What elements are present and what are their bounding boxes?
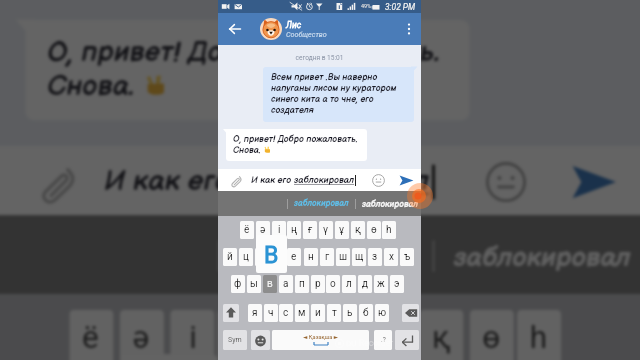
staticText: ы	[250, 278, 258, 290]
button[interactable]: ц	[239, 248, 253, 266]
button[interactable]: қ	[419, 310, 463, 360]
button[interactable]: Avatar	[260, 18, 282, 40]
button[interactable]: з	[368, 248, 382, 266]
staticText: и	[315, 307, 321, 319]
button[interactable]: ү	[318, 310, 362, 360]
button[interactable]: заблокировал	[288, 194, 355, 214]
staticText: д	[362, 278, 369, 290]
button[interactable]: ң	[217, 310, 262, 360]
button[interactable]: р	[311, 275, 325, 293]
button[interactable]: д	[358, 275, 372, 293]
staticText: заблокировал	[294, 199, 349, 209]
button[interactable]: т	[327, 304, 341, 322]
button[interactable]: заблокировал	[221, 225, 432, 288]
button[interactable]: с	[279, 304, 293, 322]
staticText: ё	[82, 319, 101, 357]
staticText: ё	[244, 224, 250, 236]
button[interactable]: ы	[247, 275, 261, 293]
button[interactable]: ё	[69, 310, 113, 360]
staticText: ү	[331, 319, 350, 357]
button[interactable]: Enter	[395, 330, 419, 350]
button[interactable]: Всем привет .Вы наверно напуганы лисом н…	[263, 67, 414, 122]
staticText: ж	[377, 278, 385, 290]
staticText: э	[394, 278, 400, 290]
button[interactable]: ж	[374, 275, 388, 293]
button[interactable]: қ	[351, 221, 365, 239]
button[interactable]: й	[223, 248, 237, 266]
button[interactable]: Send	[399, 173, 414, 188]
button[interactable]: ө	[470, 310, 514, 360]
button[interactable]: н	[304, 248, 318, 266]
button[interactable]: Shift	[223, 304, 239, 322]
button[interactable]: я	[248, 304, 262, 322]
staticText: Сообщество	[286, 30, 327, 38]
staticText: с	[283, 307, 289, 319]
button[interactable]: к	[271, 248, 285, 266]
button[interactable]: ф	[231, 275, 245, 293]
button[interactable]: h	[517, 310, 561, 360]
button[interactable]: а	[279, 275, 293, 293]
button[interactable]: г	[320, 248, 334, 266]
button[interactable]: е	[287, 248, 301, 266]
staticText: заблокировал	[294, 175, 355, 186]
staticText: i	[278, 224, 281, 236]
staticText: ү	[323, 224, 329, 236]
button[interactable]: Emoji keyboard	[251, 330, 270, 350]
button[interactable]: Punctuation	[374, 330, 392, 350]
button[interactable]: Send	[571, 158, 618, 206]
button[interactable]: ё	[240, 221, 254, 239]
staticText: Всем привет .Вы наверно напуганы лисом н…	[271, 72, 412, 116]
button[interactable]: в	[263, 275, 277, 293]
button[interactable]: м	[295, 304, 309, 322]
staticText: х	[389, 251, 394, 263]
button[interactable]: h	[382, 221, 396, 239]
staticText: п	[299, 278, 305, 290]
button[interactable]: б	[359, 304, 373, 322]
button[interactable]: ң	[287, 221, 301, 239]
button[interactable]: ө	[367, 221, 381, 239]
staticText: h	[530, 319, 549, 357]
button[interactable]: Space	[272, 330, 369, 350]
button[interactable]: о	[326, 275, 340, 293]
button[interactable]: ю	[375, 304, 389, 322]
button[interactable]: i	[170, 310, 214, 360]
button[interactable]: Emoji	[485, 162, 526, 203]
button[interactable]: Attach file	[35, 162, 79, 206]
button[interactable]: О, привет! Добро пожаловать. Снова.	[25, 20, 470, 121]
button[interactable]: Back	[224, 18, 246, 40]
button[interactable]: ұ	[369, 310, 413, 360]
button[interactable]: ә	[120, 310, 164, 360]
button[interactable]: ч	[264, 304, 278, 322]
button[interactable]: заблокировал	[435, 225, 640, 288]
button[interactable]: п	[295, 275, 309, 293]
button[interactable]: Emoji	[372, 174, 385, 187]
button[interactable]: ү	[319, 221, 333, 239]
button[interactable]: э	[390, 275, 404, 293]
button[interactable]: ғ	[268, 310, 312, 360]
button[interactable]: ъ	[400, 248, 414, 266]
button[interactable]: х	[384, 248, 398, 266]
button[interactable]: Backspace	[402, 304, 419, 322]
button[interactable]: ш	[336, 248, 350, 266]
button[interactable]: и	[311, 304, 325, 322]
button[interactable]: заблокировал	[356, 194, 424, 214]
staticText: заблокировал	[362, 199, 418, 209]
button[interactable]: i	[272, 221, 286, 239]
button[interactable]: ь	[343, 304, 357, 322]
button[interactable]: у	[255, 248, 269, 266]
staticText: е	[291, 251, 297, 263]
staticText: 49%	[361, 3, 372, 9]
staticText: ю	[378, 307, 387, 319]
staticText: заблокировал	[454, 240, 631, 272]
button[interactable]: ғ	[303, 221, 317, 239]
staticText: р	[315, 278, 321, 290]
button[interactable]: ұ	[335, 221, 349, 239]
button[interactable]: л	[342, 275, 356, 293]
button[interactable]: More options	[400, 20, 418, 38]
button[interactable]: Symbols	[223, 330, 247, 350]
button[interactable]: ә	[256, 221, 270, 239]
button[interactable]: щ	[352, 248, 366, 266]
button[interactable]: Attach file	[229, 174, 243, 188]
button[interactable]: О, привет! Добро пожаловать. Снова.	[226, 129, 367, 161]
